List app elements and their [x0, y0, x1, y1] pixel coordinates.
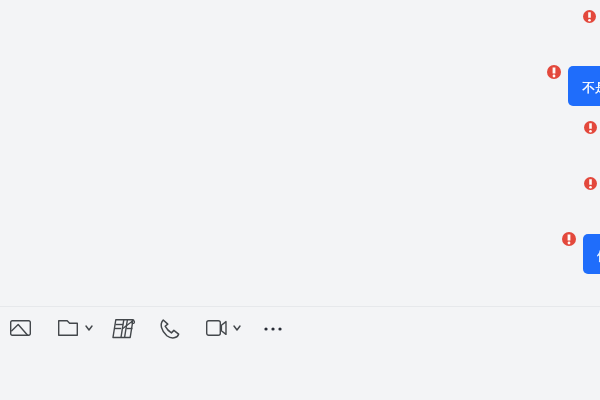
button[interactable]: More options — [263, 323, 283, 335]
button[interactable]: Message failed to send, tap to resend — [584, 177, 597, 190]
button[interactable]: Video call — [206, 319, 240, 337]
button[interactable]: Voice call — [160, 319, 179, 338]
button[interactable]: Message failed to send, tap to resend — [562, 232, 576, 246]
staticText: 不是 — [582, 79, 600, 95]
button[interactable]: Message failed to send, tap to resend — [583, 10, 596, 23]
staticText: 们 — [597, 247, 600, 263]
button[interactable]: Send picture — [10, 320, 31, 336]
button[interactable]: 不是 — [568, 66, 600, 106]
button[interactable]: 们 — [583, 234, 600, 274]
button[interactable]: Message failed to send, tap to resend — [547, 65, 561, 79]
button[interactable]: Message failed to send, tap to resend — [584, 121, 597, 134]
button[interactable]: Send file — [58, 320, 92, 336]
button[interactable]: Send gift — [113, 319, 133, 338]
